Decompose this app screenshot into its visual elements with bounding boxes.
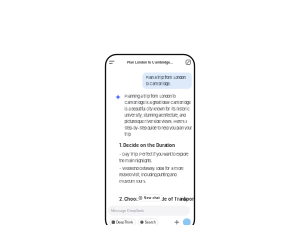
button[interactable]: Scroll to bottom [182,196,187,201]
staticText: 2. Choose Your Mode of Transport [119,197,196,202]
button[interactable]: Message DeepSeek [108,205,190,216]
staticText: 1. Decide on the Duration [119,143,175,148]
staticText: Plan a trip from London to Cambridge. [145,75,185,86]
button[interactable]: New chat [183,57,193,67]
button[interactable]: Menu [107,57,117,67]
staticText: - Day Trip: Perfect if you want to explo… [119,152,188,163]
staticText: - Weekend Getaway: Ideal for a more rela… [119,166,183,184]
button[interactable]: Add attachment [173,219,180,225]
button[interactable]: New chat [137,195,163,201]
staticText: Search [145,220,156,224]
staticText: New chat [144,196,160,200]
staticText: Message DeepSeek [111,208,144,213]
button[interactable]: Search [138,219,158,225]
staticText: Plan London to Cambridge... [127,60,173,64]
button[interactable]: DeepThink [109,219,135,225]
button[interactable]: Send [183,218,191,225]
staticText: DeepThink [116,220,133,224]
staticText: Planning a trip from London to Cambridge… [124,94,192,137]
